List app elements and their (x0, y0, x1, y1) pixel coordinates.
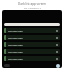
button[interactable]: List item title (4, 56, 60, 61)
button[interactable]: List item title (4, 28, 60, 33)
button[interactable]: Menu (4, 64, 10, 67)
button[interactable]: List item title (4, 35, 60, 40)
staticText: List item title (8, 36, 23, 39)
staticText: List item title (8, 29, 23, 32)
staticText: for Android 14 (24, 6, 41, 9)
staticText: Dark list app screen (18, 2, 46, 6)
button[interactable]: List item title (4, 49, 60, 54)
staticText: List item title (8, 57, 23, 60)
staticText: List item title (8, 50, 23, 53)
button[interactable] (4, 23, 60, 26)
button[interactable]: Add (56, 64, 60, 68)
staticText: List item title (8, 43, 23, 46)
button[interactable]: List item title (4, 42, 60, 47)
